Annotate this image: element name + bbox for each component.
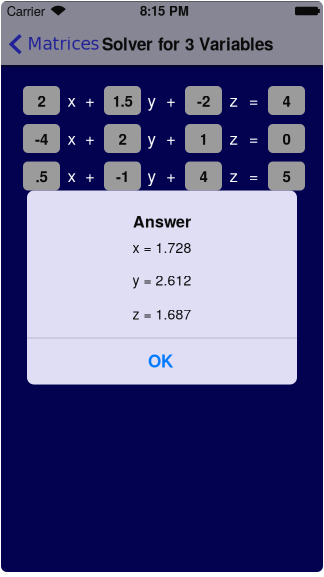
staticText: 1 xyxy=(199,128,207,149)
staticText: Answer xyxy=(133,209,191,232)
staticText: + xyxy=(85,125,95,150)
staticText: = xyxy=(248,87,258,112)
staticText: x = 1.728 xyxy=(132,237,191,257)
staticText: 0 xyxy=(282,128,290,149)
staticText: y xyxy=(147,87,156,112)
staticText: x xyxy=(67,163,76,187)
staticText: y = 2.612 xyxy=(132,269,191,289)
staticText: x xyxy=(67,87,76,112)
staticText: 4 xyxy=(199,165,207,187)
staticText: = xyxy=(248,125,258,150)
staticText: z = 1.687 xyxy=(132,303,191,323)
staticText: 4 xyxy=(282,90,290,111)
button[interactable]: 4 xyxy=(268,86,305,115)
staticText: -4 xyxy=(35,128,48,149)
button[interactable]: Matrices xyxy=(1,21,105,65)
staticText: + xyxy=(166,87,176,112)
button[interactable]: 0 xyxy=(268,124,305,153)
button[interactable]: -4 xyxy=(23,124,60,153)
button[interactable]: -1 xyxy=(104,161,141,190)
button[interactable]: -2 xyxy=(185,86,222,115)
staticText: + xyxy=(85,163,95,187)
button[interactable]: .5 xyxy=(23,161,60,190)
staticText: y xyxy=(147,125,156,150)
button[interactable]: 2 xyxy=(23,86,60,115)
button[interactable]: 5 xyxy=(268,161,305,190)
staticText: z xyxy=(229,125,238,150)
staticText: z xyxy=(229,87,238,112)
staticText: OK xyxy=(148,348,173,373)
staticText: z xyxy=(229,163,238,187)
staticText: Solver for 3 Variables xyxy=(102,31,273,56)
staticText: -1 xyxy=(116,165,129,187)
staticText: 8:15 PM xyxy=(140,1,189,20)
staticText: = xyxy=(248,163,258,187)
staticText: y xyxy=(147,163,156,187)
staticText: -2 xyxy=(197,90,210,111)
staticText: 1.5 xyxy=(112,90,132,111)
staticText: 2 xyxy=(37,90,45,111)
staticText: x xyxy=(67,125,76,150)
staticText: .5 xyxy=(35,165,47,187)
staticText: + xyxy=(166,125,176,150)
button[interactable]: 2 xyxy=(104,124,141,153)
staticText: Matrices xyxy=(27,34,99,54)
staticText: + xyxy=(166,163,176,187)
button[interactable]: 4 xyxy=(185,161,222,190)
staticText: 5 xyxy=(282,165,290,187)
button[interactable]: 1.5 xyxy=(104,86,141,115)
staticText: 2 xyxy=(118,128,126,149)
staticText: Carrier xyxy=(7,1,45,20)
staticText: + xyxy=(85,87,95,112)
button[interactable]: OK xyxy=(27,337,297,383)
button[interactable]: 1 xyxy=(185,124,222,153)
